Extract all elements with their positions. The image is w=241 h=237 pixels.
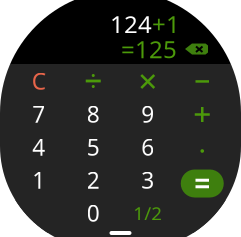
button[interactable]: 0 xyxy=(66,200,120,233)
button[interactable]: Plus xyxy=(175,101,229,134)
button[interactable]: Divide xyxy=(66,68,120,101)
button[interactable]: 4 xyxy=(11,134,66,167)
staticText: 9 xyxy=(141,99,154,129)
staticText: +1 xyxy=(152,8,180,40)
staticText: 5 xyxy=(87,132,100,162)
button[interactable]: 2 xyxy=(66,167,120,200)
staticText: 1 xyxy=(32,165,45,195)
button[interactable]: 6 xyxy=(120,134,175,167)
staticText: 1/2 xyxy=(133,201,162,225)
staticText: 8 xyxy=(87,99,100,129)
button[interactable]: Multiply xyxy=(120,68,175,101)
staticText: 0 xyxy=(87,198,100,228)
button[interactable]: 5 xyxy=(66,134,120,167)
button[interactable]: 3 xyxy=(120,167,175,200)
button[interactable]: 7 xyxy=(11,101,66,134)
button[interactable]: 1 xyxy=(11,167,66,200)
button[interactable]: Decimal point xyxy=(175,134,229,167)
button[interactable]: 8 xyxy=(66,101,120,134)
button[interactable]: 9 xyxy=(120,101,175,134)
staticText: C xyxy=(32,66,46,96)
staticText: 6 xyxy=(141,132,154,162)
button[interactable]: Minus xyxy=(175,68,229,101)
staticText: 124 xyxy=(110,8,152,40)
staticText: 3 xyxy=(141,165,154,195)
staticText: =125 xyxy=(121,33,177,65)
staticText: 2 xyxy=(87,165,100,195)
button[interactable]: Equals xyxy=(175,167,229,200)
staticText: 7 xyxy=(32,99,45,129)
button[interactable]: C xyxy=(11,68,66,101)
staticText: 4 xyxy=(32,132,45,162)
button[interactable]: Delete xyxy=(185,43,208,54)
button[interactable]: 1/2 xyxy=(120,200,175,233)
